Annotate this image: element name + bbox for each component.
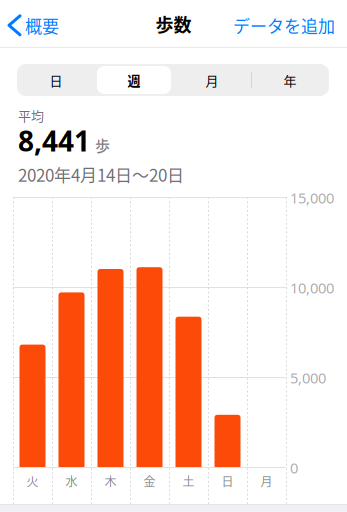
staticText: 15,000	[290, 188, 334, 207]
staticText: 金	[143, 472, 155, 490]
staticText: 水	[65, 472, 77, 490]
button[interactable]: 概要	[9, 13, 59, 38]
button[interactable]: 日	[17, 64, 95, 96]
button[interactable]: データを追加	[233, 13, 335, 38]
staticText: 月	[260, 472, 272, 490]
staticText: 週	[127, 71, 140, 89]
staticText: 10,000	[290, 278, 334, 297]
staticText: 歩	[95, 134, 110, 156]
staticText: 火	[26, 472, 38, 490]
staticText: 日	[221, 472, 233, 490]
staticText: 2020年4月14日〜20日	[18, 162, 184, 187]
button[interactable]: 年	[251, 64, 329, 96]
staticText: 概要	[25, 13, 59, 38]
staticText: 5,000	[290, 368, 326, 387]
staticText: 8,441	[18, 122, 90, 159]
button[interactable]: 週	[95, 64, 173, 96]
staticText: データを追加	[233, 13, 335, 38]
staticText: 月	[205, 71, 218, 89]
staticText: 日	[49, 71, 62, 89]
staticText: 平均	[18, 106, 44, 125]
button[interactable]: 月	[173, 64, 251, 96]
staticText: 年	[283, 71, 296, 89]
staticText: 0	[290, 458, 298, 477]
staticText: 木	[104, 472, 116, 490]
staticText: 歩数	[155, 11, 191, 37]
staticText: 土	[182, 472, 194, 490]
